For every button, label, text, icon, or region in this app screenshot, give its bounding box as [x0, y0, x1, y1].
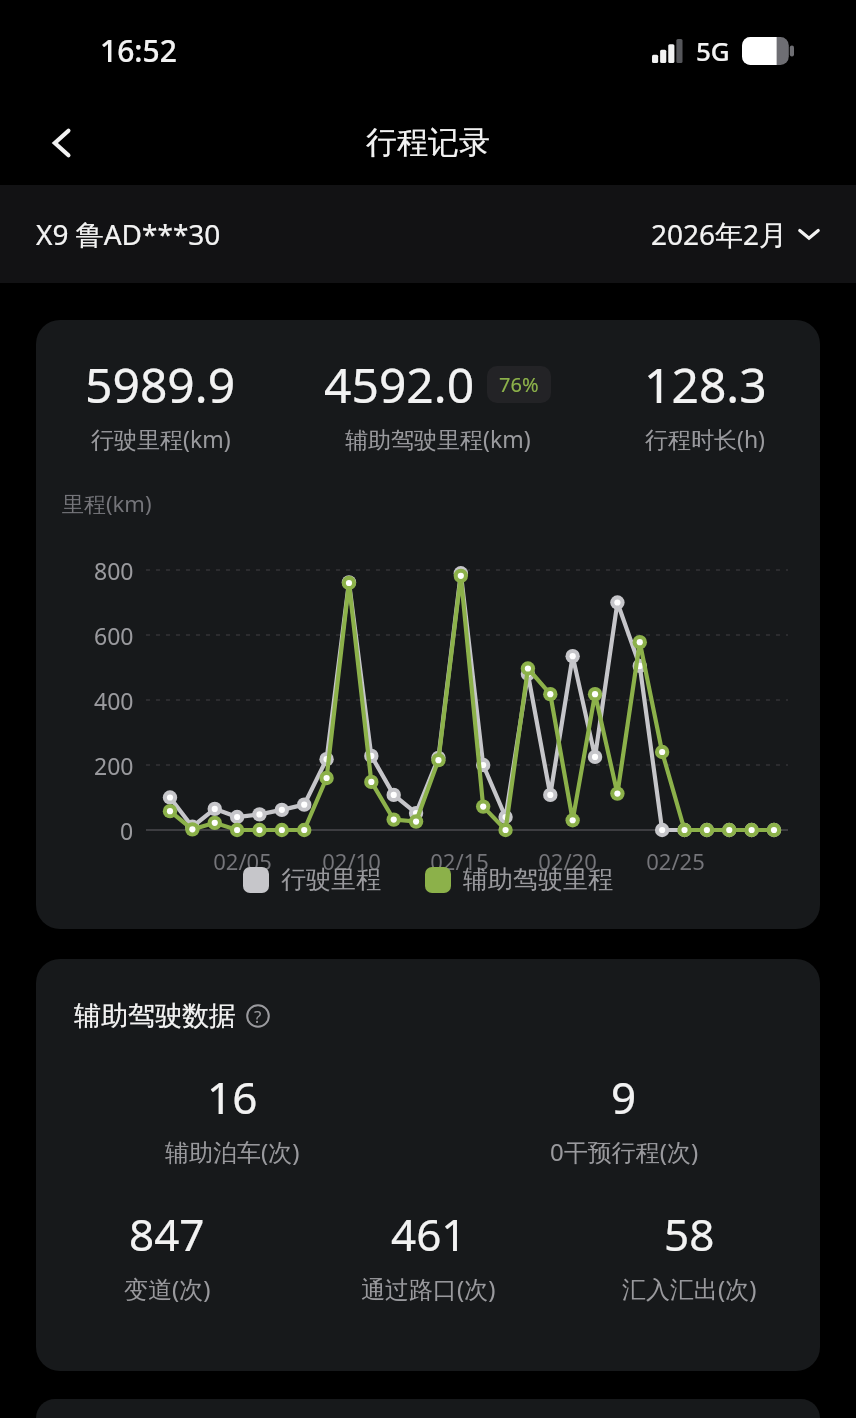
staticText: 461: [391, 1204, 467, 1264]
staticText: 800: [94, 555, 134, 586]
staticText: 辅助驾驶里程(km): [345, 423, 531, 454]
staticText: 58: [664, 1204, 715, 1264]
staticText: 02/25: [646, 846, 705, 876]
staticText: 辅助泊车(次): [165, 1135, 300, 1168]
staticText: 200: [94, 750, 134, 781]
staticText: 4592.0: [324, 352, 475, 417]
staticText: 辅助驾驶里程: [463, 864, 613, 895]
button[interactable]: 辅助驾驶数据: [74, 999, 272, 1033]
staticText: 400: [94, 685, 134, 716]
staticText: ?: [254, 1005, 262, 1028]
staticText: 辅助驾驶数据: [74, 999, 236, 1033]
button[interactable]: 2026年2月: [651, 207, 820, 261]
staticText: 847: [129, 1204, 205, 1264]
staticText: 通过路口(次): [361, 1272, 496, 1305]
staticText: 5989.9: [85, 352, 236, 417]
staticText: 128.3: [644, 352, 767, 417]
staticText: 里程(km): [62, 488, 152, 518]
staticText: 变道(次): [124, 1272, 211, 1305]
staticText: 2026年2月: [651, 215, 788, 253]
staticText: 02/10: [322, 846, 381, 876]
staticText: X9 鲁AD***30: [36, 215, 221, 253]
other: Help: [244, 1002, 272, 1030]
staticText: 行驶里程: [281, 864, 381, 895]
staticText: 5G: [696, 33, 730, 68]
staticText: 02/05: [213, 846, 272, 876]
staticText: 0: [120, 815, 134, 846]
staticText: 汇入汇出(次): [622, 1272, 757, 1305]
staticText: 16:52: [100, 30, 177, 71]
staticText: 0干预行程(次): [550, 1135, 699, 1168]
staticText: 行程时长(h): [645, 423, 766, 454]
staticText: 02/20: [538, 846, 597, 876]
staticText: 76%: [499, 371, 539, 398]
staticText: 02/15: [430, 846, 489, 876]
staticText: 行程记录: [366, 123, 490, 162]
button[interactable]: Back: [28, 108, 98, 178]
staticText: 9: [611, 1067, 637, 1127]
staticText: 行驶里程(km): [91, 423, 231, 454]
staticText: 16: [207, 1067, 258, 1127]
staticText: 600: [94, 620, 134, 651]
